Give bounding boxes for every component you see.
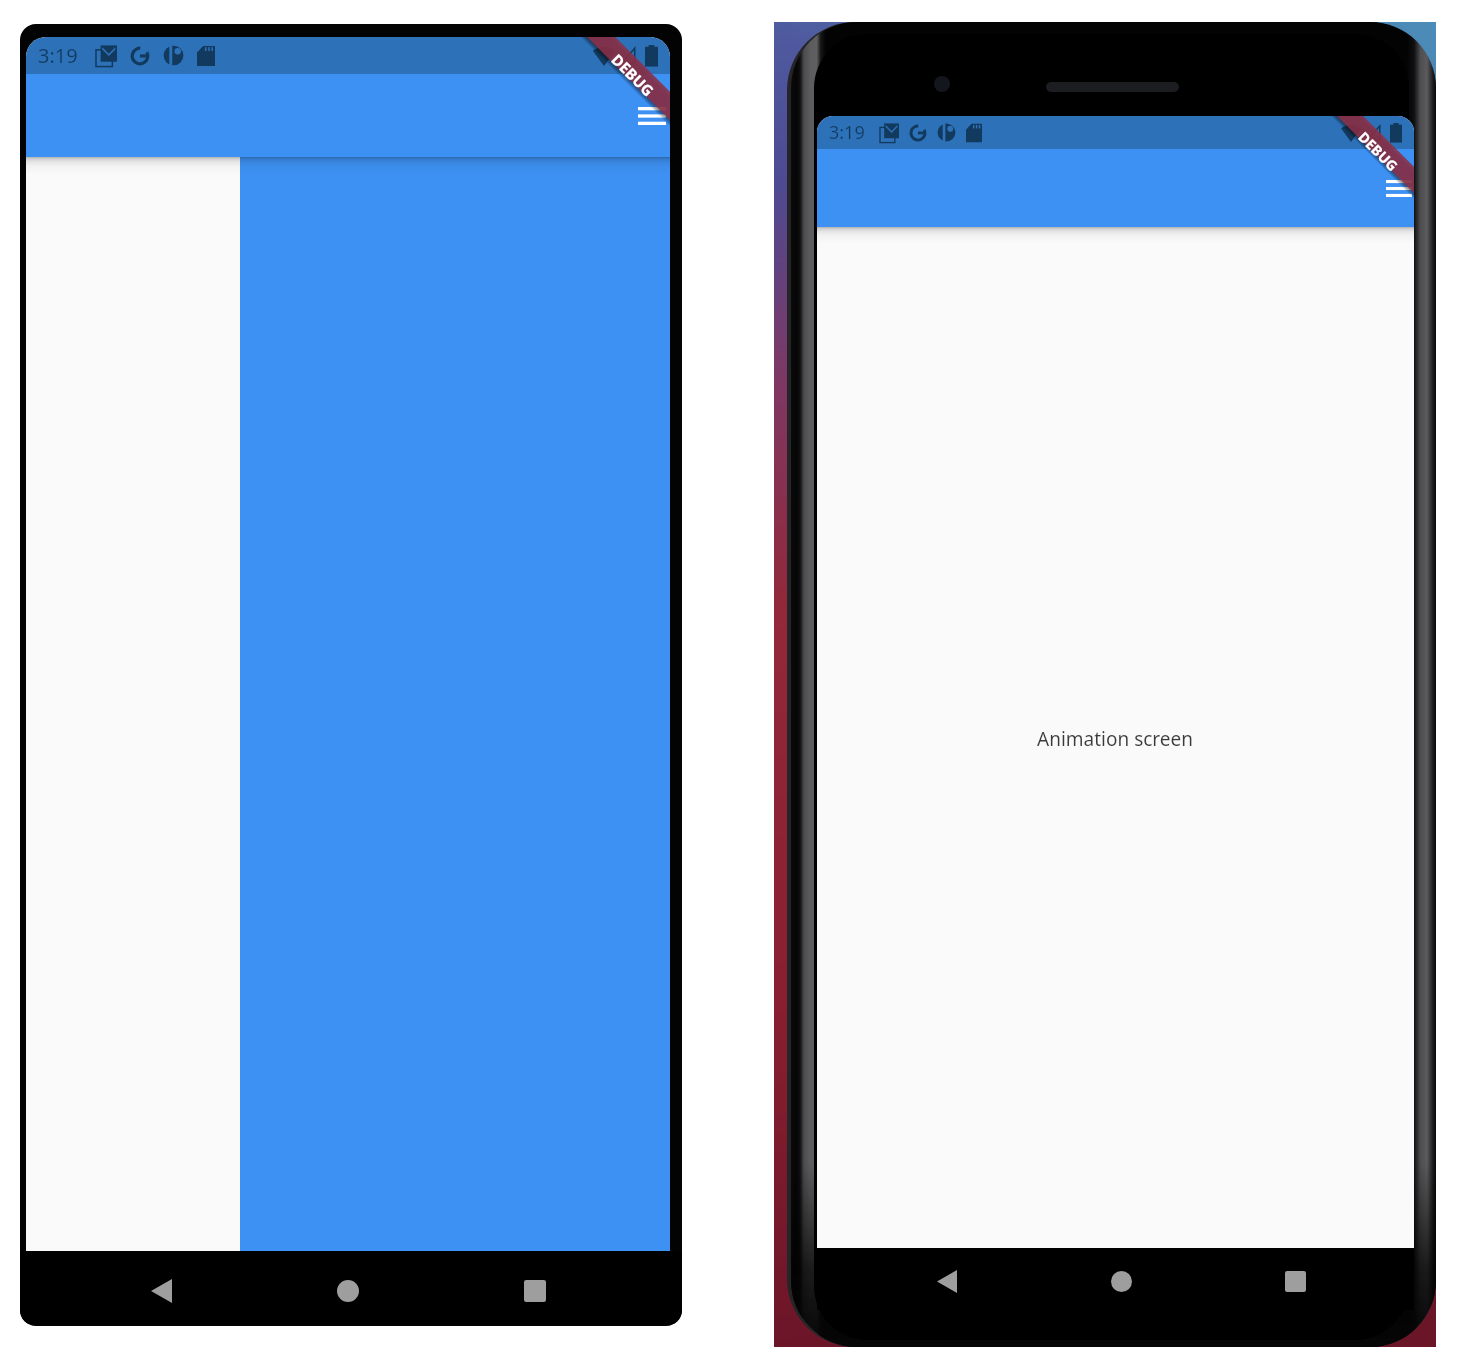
button[interactable]: Back: [919, 1253, 975, 1309]
button[interactable]: Open navigation menu: [628, 92, 670, 140]
staticText: DEBUG: [1354, 127, 1403, 176]
button[interactable]: Home: [320, 1263, 376, 1319]
staticText: DEBUG: [607, 49, 658, 100]
staticText: 3:19: [829, 120, 865, 145]
staticText: 3:19: [38, 42, 78, 69]
staticText: Animation screen: [1037, 726, 1194, 752]
button[interactable]: Recent apps: [1267, 1253, 1323, 1309]
button[interactable]: Back: [133, 1263, 189, 1319]
button[interactable]: Open navigation menu: [1376, 165, 1414, 211]
button[interactable]: Recent apps: [507, 1263, 563, 1319]
button[interactable]: Home: [1093, 1253, 1149, 1309]
